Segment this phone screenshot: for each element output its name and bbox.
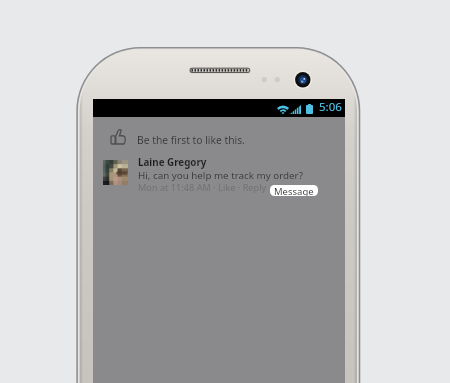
button[interactable]: Message: [270, 185, 318, 196]
other: Wi-Fi: [277, 104, 289, 114]
button[interactable]: Be the first to like this.: [93, 123, 345, 155]
other: Signal strength: [290, 105, 301, 114]
staticText: Hi, can you help me track my order?: [138, 169, 303, 182]
staticText: 5:06: [319, 99, 342, 115]
staticText: Message: [274, 185, 314, 196]
staticText: Mon at 11:48 AM · Like · Reply ·: [138, 181, 272, 194]
button[interactable]: Laine Gregory: [138, 156, 207, 169]
button[interactable]: Laine Gregory profile photo: [103, 160, 128, 185]
other: Battery: [306, 104, 313, 114]
staticText: Be the first to like this.: [137, 133, 245, 147]
